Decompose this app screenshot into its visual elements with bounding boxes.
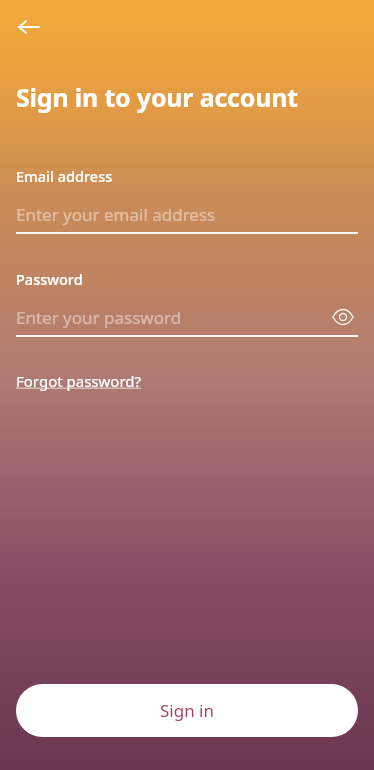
staticText: Email address <box>16 166 113 186</box>
staticText: Enter your email address <box>16 203 216 226</box>
button[interactable]: Show password <box>328 303 358 331</box>
staticText: Enter your password <box>16 306 182 329</box>
staticText: Sign in to your account <box>16 80 298 114</box>
button[interactable]: Back <box>8 6 50 48</box>
button[interactable]: Forgot password? <box>16 371 142 391</box>
staticText: Sign in <box>160 699 214 722</box>
button[interactable]: Sign in <box>16 684 358 737</box>
staticText: Password <box>16 269 83 289</box>
button[interactable]: Enter your email address <box>16 200 358 228</box>
staticText: Forgot password? <box>16 371 142 391</box>
button[interactable]: Enter your password <box>16 303 328 331</box>
